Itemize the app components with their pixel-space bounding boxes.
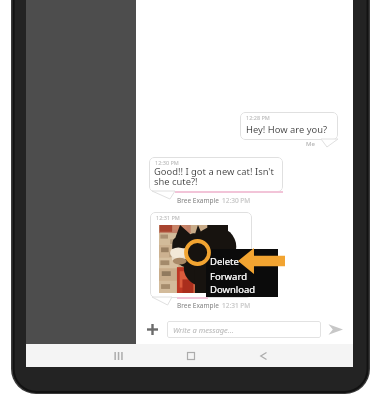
button[interactable] <box>150 212 252 298</box>
button[interactable]: Send <box>325 319 345 339</box>
button[interactable]: Download <box>210 283 277 296</box>
staticText: 12:31 PM <box>156 214 180 221</box>
staticText: Bree Example <box>177 301 219 310</box>
staticText: Hey! How are you? <box>246 123 328 136</box>
button[interactable]: Forward <box>210 270 277 283</box>
staticText: 12:31 PM <box>222 301 251 310</box>
button[interactable]: Add attachment <box>142 319 162 339</box>
staticText: Good!! I got a new cat! Isn't she cute?! <box>154 165 280 188</box>
button[interactable]: Write a message... <box>167 321 321 338</box>
staticText: 12:28 PM <box>246 114 270 121</box>
button[interactable]: 12:30 PM <box>149 157 283 192</box>
staticText: Download <box>210 283 256 296</box>
button[interactable]: Recent apps <box>98 344 138 367</box>
staticText: Write a message... <box>173 325 234 335</box>
staticText: Bree Example <box>177 196 219 205</box>
button[interactable]: Home <box>170 344 211 367</box>
staticText: Forward <box>210 270 247 283</box>
staticText: Me <box>306 140 315 148</box>
staticText: Delete <box>210 255 239 268</box>
staticText: 12:30 PM <box>155 159 179 166</box>
button[interactable]: Back <box>243 344 283 367</box>
staticText: 12:30 PM <box>222 196 251 205</box>
button[interactable]: 12:28 PM <box>240 112 338 140</box>
button[interactable]: Delete <box>210 255 277 268</box>
